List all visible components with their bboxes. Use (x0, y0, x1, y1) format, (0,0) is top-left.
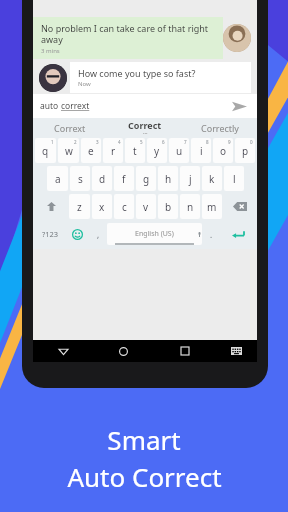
button[interactable]: Enter (220, 222, 256, 246)
staticText: w (65, 144, 73, 158)
staticText: s (78, 172, 83, 186)
button[interactable]: z (69, 194, 90, 219)
staticText: x (99, 200, 105, 214)
button[interactable]: . (202, 222, 220, 246)
button[interactable]: e (81, 138, 101, 163)
button[interactable]: Back (33, 340, 93, 362)
staticText: 6 (162, 139, 165, 145)
staticText: k (209, 172, 215, 186)
button[interactable]: Home (93, 340, 154, 362)
button[interactable]: s (70, 166, 90, 191)
staticText: v (143, 200, 149, 214)
button[interactable]: q (35, 138, 56, 163)
staticText: Smart (107, 422, 181, 457)
staticText: Now (78, 80, 91, 88)
staticText: 3 mins (41, 47, 60, 55)
staticText: How come you type so fast? (78, 67, 196, 79)
button[interactable]: y (147, 138, 167, 163)
button[interactable]: c (114, 194, 134, 219)
staticText: r (111, 144, 116, 158)
button[interactable]: ?123 (34, 222, 66, 246)
staticText: English (US) (135, 229, 174, 239)
staticText: j (189, 172, 192, 186)
button[interactable]: Send (228, 95, 250, 117)
staticText: h (165, 172, 172, 186)
staticText: ••• (143, 131, 148, 136)
button[interactable]: w (58, 138, 79, 163)
staticText: ?123 (42, 229, 59, 239)
button[interactable]: Corrext (33, 118, 107, 137)
staticText: p (242, 144, 249, 158)
staticText: 9 (228, 139, 231, 145)
staticText: , (97, 229, 100, 240)
button[interactable]: , (89, 222, 107, 246)
button[interactable]: u (169, 138, 189, 163)
staticText: q (42, 144, 49, 158)
staticText: f (122, 172, 126, 186)
button[interactable]: m (202, 194, 222, 219)
button[interactable]: Backspace (223, 194, 256, 219)
staticText: a (55, 172, 61, 186)
button[interactable]: Shift (34, 194, 68, 219)
staticText: Corrext (54, 122, 86, 134)
button[interactable]: Correct (107, 118, 182, 137)
staticText: No problem I can take care of that right… (41, 22, 217, 45)
button[interactable]: v (136, 194, 156, 219)
staticText: m (207, 200, 217, 214)
staticText: y (154, 144, 160, 158)
staticText: Correct (128, 119, 162, 131)
staticText: d (99, 172, 106, 186)
staticText: o (220, 144, 227, 158)
staticText: auto (40, 100, 61, 112)
button[interactable]: d (92, 166, 112, 191)
staticText: g (143, 172, 150, 186)
button[interactable]: Recents (154, 340, 215, 362)
staticText: 5 (140, 139, 143, 145)
button[interactable]: p (235, 138, 255, 163)
button[interactable]: x (92, 194, 112, 219)
button[interactable]: Emoji (66, 222, 89, 246)
staticText: . (210, 229, 213, 240)
staticText: 0 (250, 139, 253, 145)
staticText: 7 (184, 139, 187, 145)
staticText: Auto Correct (67, 459, 222, 494)
staticText: corrext (61, 100, 90, 112)
button[interactable]: a (47, 166, 68, 191)
staticText: l (233, 172, 236, 186)
staticText: c (122, 200, 127, 214)
staticText: 2 (74, 139, 77, 145)
button[interactable]: Correctly (182, 118, 257, 137)
button[interactable]: l (224, 166, 244, 191)
button[interactable]: English (US) (107, 223, 202, 245)
button[interactable]: n (180, 194, 200, 219)
staticText: i (200, 144, 203, 158)
staticText: 4 (118, 139, 121, 145)
button[interactable]: g (136, 166, 156, 191)
button[interactable]: h (158, 166, 178, 191)
button[interactable]: r (103, 138, 123, 163)
button[interactable]: t (125, 138, 145, 163)
staticText: u (176, 144, 183, 158)
button[interactable]: i (191, 138, 211, 163)
staticText: b (165, 200, 172, 214)
staticText: e (88, 144, 94, 158)
button[interactable]: k (202, 166, 222, 191)
staticText: 8 (206, 139, 209, 145)
button[interactable]: Keyboard (215, 340, 257, 362)
staticText: 1 (51, 139, 54, 145)
staticText: t (133, 144, 137, 158)
button[interactable]: o (213, 138, 233, 163)
staticText: 3 (96, 139, 99, 145)
button[interactable]: j (180, 166, 200, 191)
button[interactable]: f (114, 166, 134, 191)
staticText: n (187, 200, 194, 214)
button[interactable]: b (158, 194, 178, 219)
staticText: z (77, 200, 82, 214)
staticText: Correctly (201, 122, 239, 134)
